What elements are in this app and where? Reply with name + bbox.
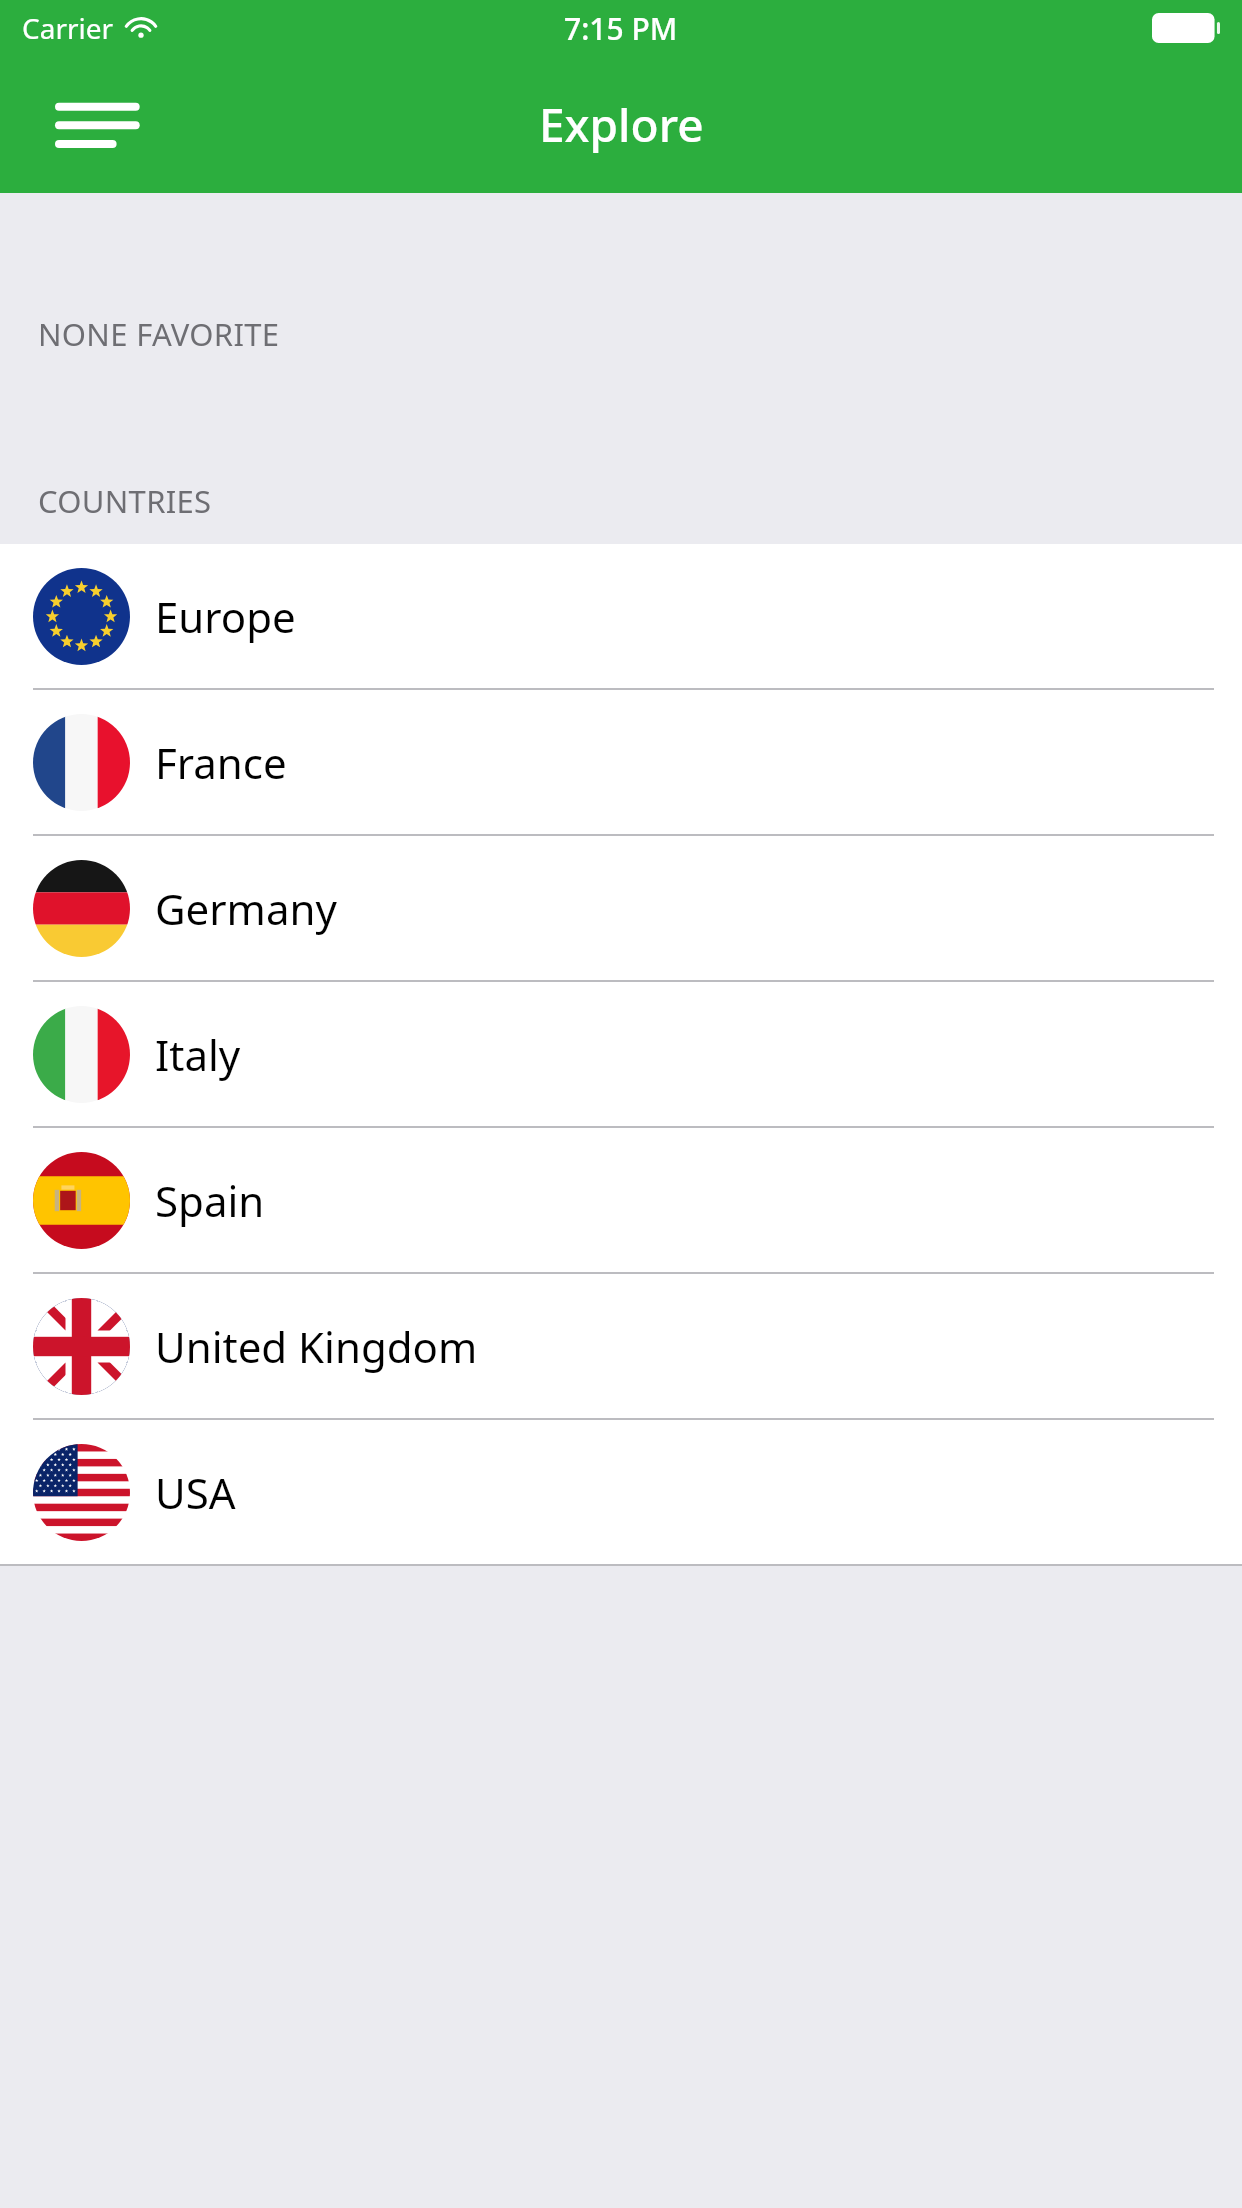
button[interactable]: United Kingdom [0, 1274, 1242, 1420]
button[interactable]: Spain [0, 1128, 1242, 1274]
staticText: Explore [539, 93, 704, 156]
staticText: Spain [155, 1172, 265, 1229]
staticText: Europe [155, 588, 296, 645]
staticText: USA [155, 1464, 236, 1521]
staticText: France [155, 734, 287, 791]
staticText: 7:15 PM [564, 8, 678, 49]
staticText: Germany [155, 880, 337, 937]
button[interactable]: Italy [0, 982, 1242, 1128]
button[interactable]: France [0, 690, 1242, 836]
staticText: COUNTRIES [38, 480, 212, 522]
staticText: Carrier [22, 9, 114, 47]
button[interactable]: Europe [0, 544, 1242, 690]
button[interactable]: USA [0, 1420, 1242, 1564]
button[interactable]: Germany [0, 836, 1242, 982]
button[interactable]: Menu [40, 75, 180, 175]
staticText: Italy [155, 1026, 241, 1083]
staticText: NONE FAVORITE [38, 313, 280, 355]
staticText: United Kingdom [155, 1318, 478, 1375]
